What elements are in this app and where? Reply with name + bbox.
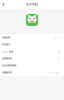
button[interactable]: 安卓版本 [0, 41, 64, 48]
staticText: 4.19.113-perf [46, 71, 59, 74]
button[interactable]: Back [0, 0, 7, 9]
staticText: 安卓版本 [2, 43, 10, 46]
staticText: 设备名称 [2, 36, 10, 39]
staticText: 运行内存和存储 [2, 64, 16, 67]
button[interactable]: 运行内存和存储 [0, 62, 64, 69]
button[interactable]: MIUI 版本 [0, 48, 64, 55]
staticText: 关于手机 [26, 3, 38, 6]
staticText: MIUI 版本 [2, 50, 13, 53]
button[interactable]: 设备名称 [0, 34, 64, 41]
button[interactable]: 处理器型号 [0, 55, 64, 62]
staticText: Mi 10 [53, 36, 59, 39]
staticText: 内核版本号 [2, 71, 12, 74]
staticText: 处理器型号 [2, 57, 12, 60]
button[interactable]: 内核版本号 [0, 69, 64, 76]
